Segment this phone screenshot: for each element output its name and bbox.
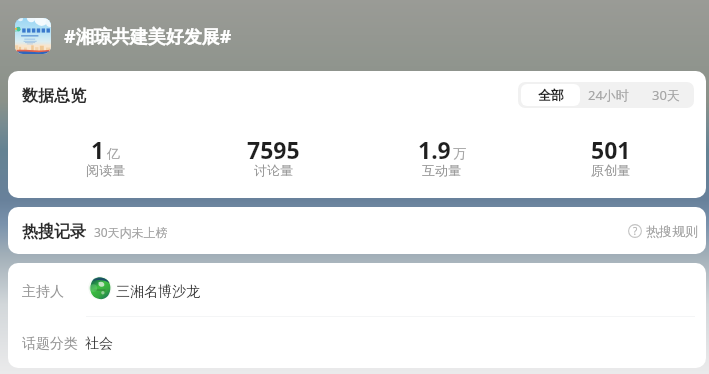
other: 主持人头像	[88, 276, 112, 300]
button[interactable]: 30天	[637, 82, 694, 108]
staticText: 互动量	[422, 162, 461, 178]
button[interactable]: 话题封面	[15, 18, 51, 54]
staticText: 三湘名博沙龙	[116, 283, 200, 301]
staticText: 30天内未上榜	[94, 224, 168, 240]
button[interactable]: 热搜记录	[8, 207, 706, 254]
button[interactable]: 话题分类	[8, 317, 706, 368]
staticText: ?	[633, 224, 638, 238]
staticText: 1	[91, 134, 105, 165]
staticText: 数据总览	[22, 86, 86, 106]
button[interactable]: 主持人	[8, 263, 706, 316]
staticText: 30天	[652, 86, 680, 104]
button[interactable]: 全部	[521, 84, 580, 106]
staticText: 主持人	[22, 283, 64, 301]
staticText: 阅读量	[86, 162, 125, 178]
staticText: 热搜规则	[646, 223, 698, 239]
staticText: 讨论量	[254, 162, 293, 178]
staticText: 原创量	[591, 162, 630, 178]
staticText: 全部	[538, 87, 564, 103]
staticText: 1.9	[418, 134, 451, 165]
button[interactable]: 7595	[189, 134, 357, 181]
staticText: 7595	[247, 134, 300, 165]
staticText: 话题分类	[22, 335, 78, 353]
staticText: 亿	[107, 145, 120, 161]
button[interactable]: 1.9	[357, 134, 526, 181]
staticText: 24小时	[588, 86, 629, 104]
staticText: #湘琼共建美好发展#	[64, 24, 232, 49]
staticText: 热搜记录	[22, 222, 86, 242]
staticText: 社会	[85, 335, 113, 353]
other: 热搜规则	[628, 224, 642, 238]
staticText: 万	[453, 145, 466, 161]
staticText: 501	[591, 134, 631, 165]
button[interactable]: 1	[21, 134, 189, 181]
button[interactable]: 24小时	[580, 82, 637, 108]
button[interactable]: 501	[526, 134, 695, 181]
